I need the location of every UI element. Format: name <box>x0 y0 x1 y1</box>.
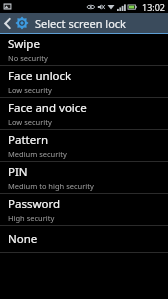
staticText: Swipe <box>8 36 40 52</box>
staticText: Select screen lock <box>35 16 126 31</box>
staticText: Password <box>8 196 61 212</box>
button[interactable]: PIN <box>0 162 168 193</box>
staticText: Low security <box>8 85 52 95</box>
other: Navigate up <box>4 18 11 29</box>
staticText: 13:02 <box>142 1 166 13</box>
staticText: Face unlock <box>8 68 72 84</box>
button[interactable]: Pattern <box>0 130 168 161</box>
button[interactable]: Navigate up <box>0 13 168 33</box>
staticText: Medium security <box>8 149 67 159</box>
button[interactable]: Face and voice <box>0 98 168 129</box>
staticText: Medium to high security <box>8 181 94 191</box>
staticText: High security <box>8 213 55 223</box>
staticText: Low security <box>8 117 52 127</box>
staticText: PIN <box>8 164 28 180</box>
button[interactable]: Password <box>0 194 168 225</box>
button[interactable]: Face unlock <box>0 66 168 97</box>
staticText: No security <box>8 53 48 63</box>
staticText: None <box>8 231 38 247</box>
staticText: Pattern <box>8 132 49 148</box>
staticText: Face and voice <box>8 100 87 116</box>
button[interactable]: None <box>0 226 168 252</box>
button[interactable]: Swipe <box>0 34 168 65</box>
